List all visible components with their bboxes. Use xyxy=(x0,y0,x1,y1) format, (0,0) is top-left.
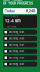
staticText: Morning Run xyxy=(8,37,23,40)
staticText: Morning Run xyxy=(8,56,23,59)
staticText: Morning Run xyxy=(8,43,23,46)
staticText: Today xyxy=(5,9,15,13)
staticText: KEEP TRACK xyxy=(3,0,22,1)
staticText: OF YOUR PROGRESS xyxy=(3,1,33,5)
staticText: 8,240 xyxy=(26,9,35,13)
staticText: This week xyxy=(5,25,16,28)
staticText: Morning Run xyxy=(8,50,23,53)
staticText: 12.4 km xyxy=(5,18,21,23)
staticText: Morning Run xyxy=(8,63,23,66)
staticText: Morning Run xyxy=(8,31,23,34)
staticText: DISTANCE xyxy=(5,15,18,18)
